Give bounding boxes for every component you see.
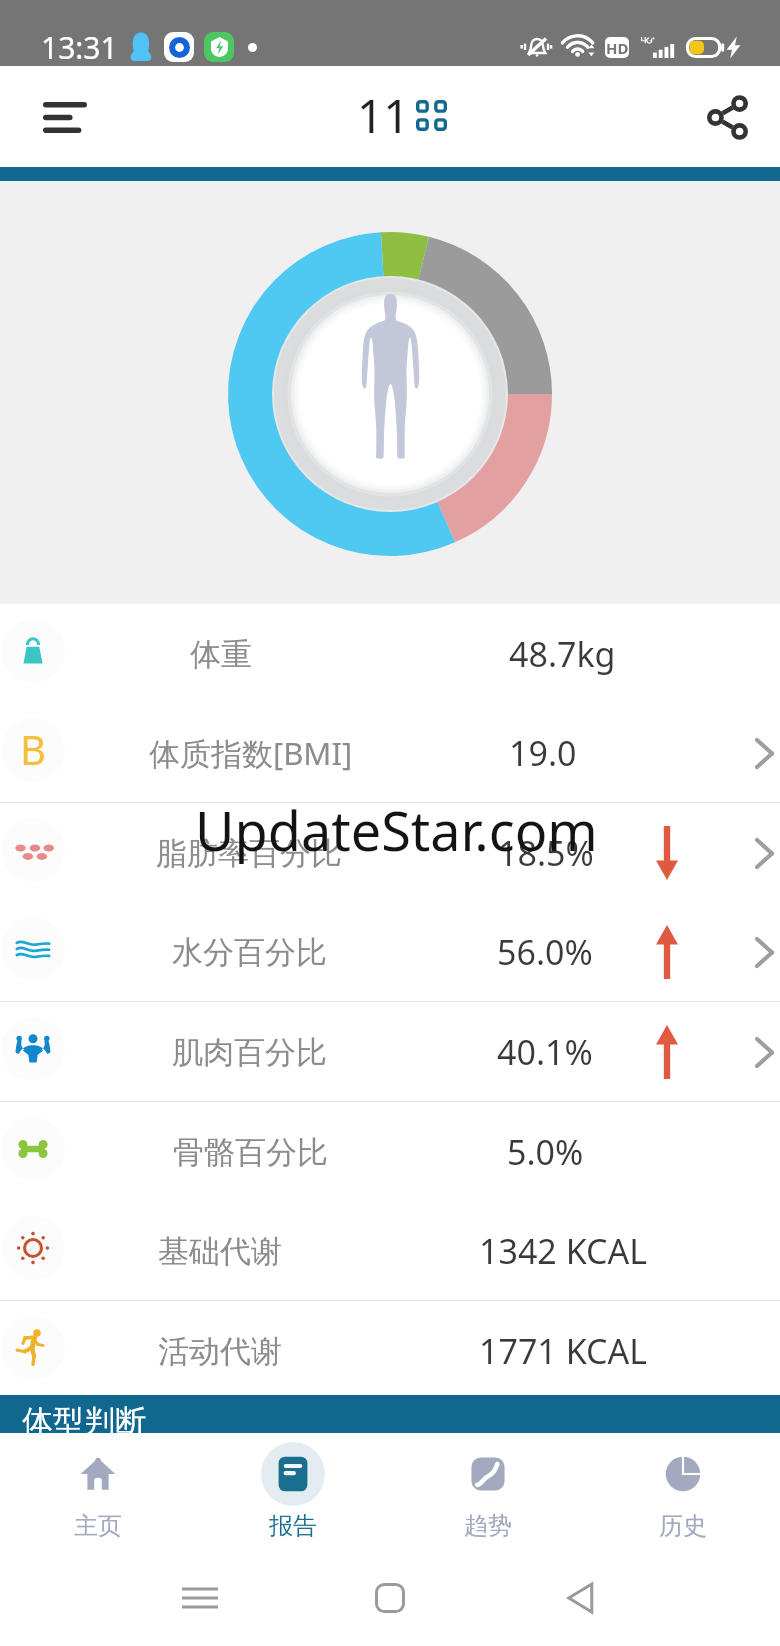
staticText: 水分百分比: [172, 933, 327, 972]
button[interactable]: B: [0, 703, 780, 803]
button[interactable]: Menu: [28, 81, 100, 153]
staticText: 体型判断: [22, 1402, 146, 1440]
button[interactable]: 基础代谢: [0, 1201, 780, 1301]
button[interactable]: 骨骼百分比: [0, 1102, 780, 1202]
staticText: 脂肪率百分比: [156, 834, 342, 873]
staticText: 48.7kg: [509, 631, 616, 677]
button[interactable]: 水分百分比: [0, 902, 780, 1002]
button[interactable]: 脂肪率百分比: [0, 803, 780, 903]
staticText: 骨骼百分比: [173, 1133, 328, 1172]
button[interactable]: 报告: [195, 1433, 390, 1550]
staticText: 56.0%: [497, 929, 593, 975]
staticText: 主页: [74, 1511, 122, 1541]
staticText: 历史: [659, 1511, 707, 1541]
staticText: 40.1%: [497, 1029, 593, 1075]
staticText: 13:31: [41, 27, 118, 68]
staticText: 体质指数[BMI]: [149, 732, 353, 774]
staticText: B: [20, 722, 46, 776]
staticText: 基础代谢: [158, 1232, 282, 1271]
button[interactable]: 历史: [585, 1433, 780, 1550]
button[interactable]: Home: [295, 1550, 485, 1646]
button[interactable]: 趋势: [390, 1433, 585, 1550]
staticText: 1342 KCAL: [479, 1228, 648, 1274]
staticText: 活动代谢: [158, 1332, 282, 1371]
staticText: 1771 KCAL: [479, 1328, 648, 1374]
button[interactable]: 主页: [0, 1433, 195, 1550]
button[interactable]: 肌肉百分比: [0, 1002, 780, 1102]
staticText: HD: [606, 38, 629, 58]
staticText: 11: [357, 84, 410, 147]
staticText: 报告: [269, 1511, 317, 1541]
button[interactable]: 活动代谢: [0, 1301, 780, 1401]
staticText: 5.0%: [507, 1129, 584, 1175]
button[interactable]: Share: [693, 83, 761, 151]
button[interactable]: 体重: [0, 604, 780, 704]
button[interactable]: Recents: [105, 1550, 295, 1646]
staticText: 体重: [190, 635, 252, 674]
staticText: 18.5%: [498, 830, 594, 876]
staticText: 趋势: [464, 1511, 512, 1541]
staticText: 19.0: [509, 730, 577, 776]
button[interactable]: Back: [485, 1550, 675, 1646]
staticText: 肌肉百分比: [172, 1033, 327, 1072]
staticText: UpdateStar.com: [195, 793, 598, 867]
